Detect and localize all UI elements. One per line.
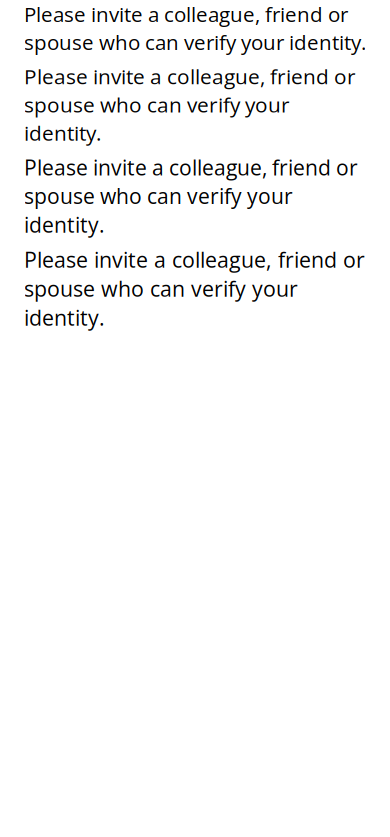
staticText: Please invite a colleague, friend or spo… (24, 0, 366, 56)
staticText: Please invite a colleague, friend or spo… (24, 153, 358, 239)
staticText: Please invite a colleague, friend or spo… (24, 62, 356, 147)
staticText: Please invite a colleague, friend or spo… (24, 245, 365, 332)
